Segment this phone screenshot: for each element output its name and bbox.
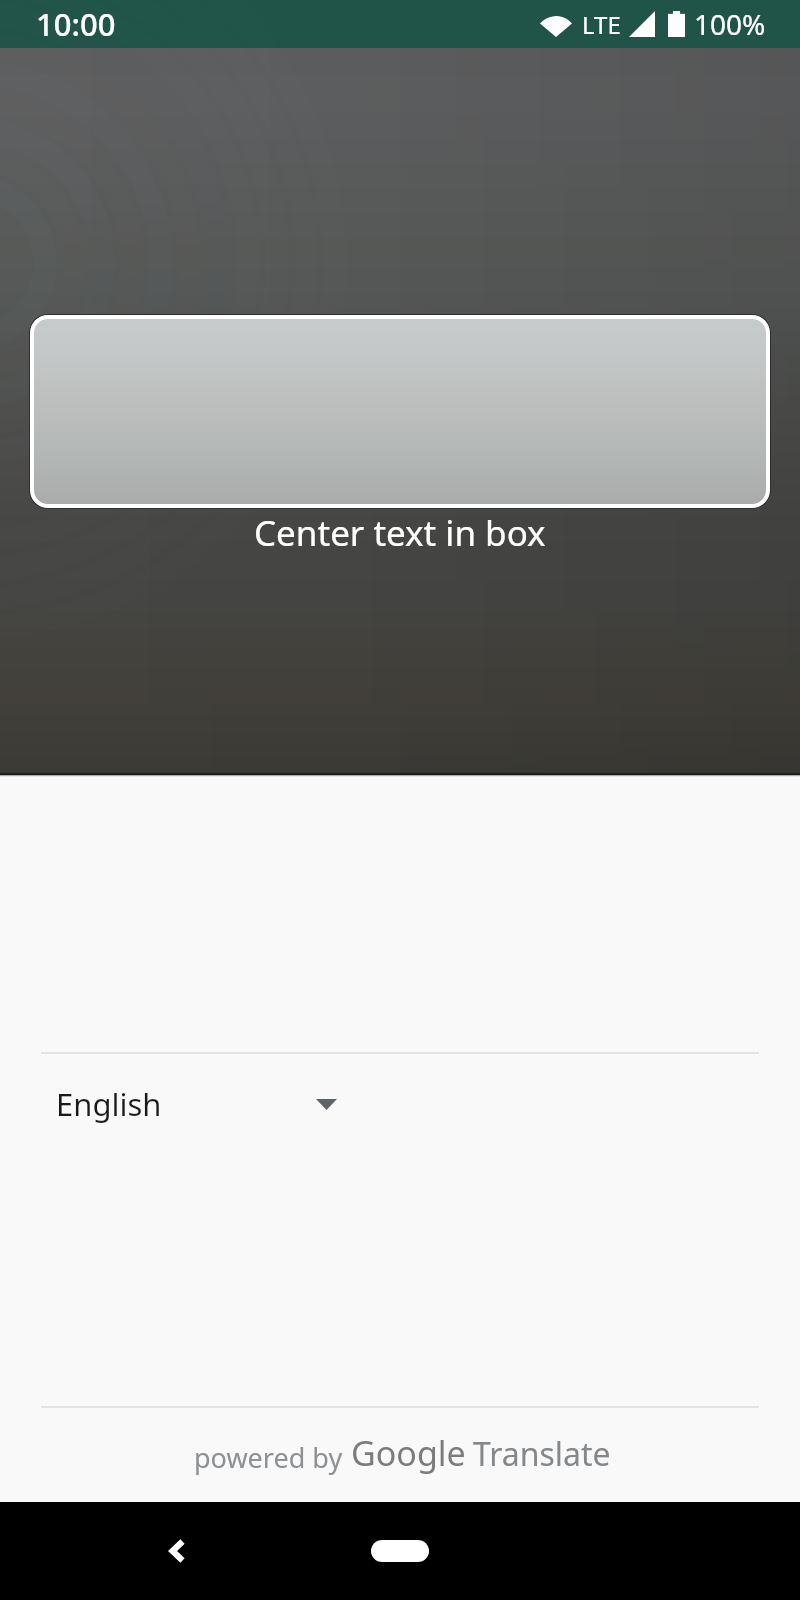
staticText: Translate (473, 1432, 611, 1476)
button[interactable]: English (0, 1063, 378, 1145)
staticText: 100% (694, 5, 766, 43)
button[interactable]: Home (371, 1540, 429, 1562)
staticText: LTE (582, 8, 621, 41)
staticText: powered by (194, 1439, 343, 1476)
staticText: Google (351, 1430, 466, 1476)
staticText: Center text in box (254, 509, 546, 557)
staticText: 10:00 (36, 3, 116, 45)
button[interactable]: Back (147, 1521, 207, 1581)
staticText: English (56, 1083, 162, 1125)
